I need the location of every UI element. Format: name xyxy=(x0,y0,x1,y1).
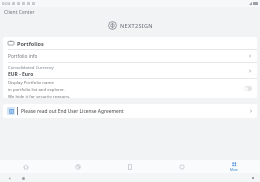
button[interactable]: Documents xyxy=(104,160,156,173)
button[interactable]: Please read out End User License Agreeme… xyxy=(3,104,257,118)
button[interactable]: Home xyxy=(21,176,25,180)
other: Open xyxy=(248,69,252,73)
button[interactable]: More xyxy=(208,160,260,173)
staticText: Portfolios xyxy=(17,40,44,47)
staticText: We hide it for security reasons. xyxy=(8,93,71,98)
staticText: NEXT2SIGN xyxy=(120,22,153,29)
button[interactable]: Overview xyxy=(251,176,255,180)
button[interactable]: Messages xyxy=(156,160,208,173)
button[interactable]: Consolidated Currency xyxy=(3,63,257,78)
staticText: Consolidated Currency xyxy=(8,64,54,70)
button[interactable]: Portfolio xyxy=(52,160,104,173)
button[interactable]: Portfolios xyxy=(3,37,257,49)
button[interactable]: Home xyxy=(0,160,52,173)
staticText: Display Portfolio name xyxy=(8,79,54,85)
button[interactable]: Display Portfolio name xyxy=(3,79,257,98)
staticText: in portfolio list and explorer. xyxy=(8,86,65,92)
button[interactable]: Portfolio info xyxy=(3,50,257,62)
staticText: 0:04 xyxy=(2,1,10,6)
staticText: Client Center xyxy=(4,9,35,16)
other: Open xyxy=(249,109,253,113)
button[interactable]: Back xyxy=(7,176,11,180)
other: Open xyxy=(248,54,252,58)
button[interactable]: Display Portfolio name toggle xyxy=(244,86,252,91)
staticText: More xyxy=(230,168,238,172)
staticText: Portfolio info xyxy=(8,53,38,60)
staticText: EUR - Euro xyxy=(8,71,34,78)
staticText: Please read out End User License Agreeme… xyxy=(21,108,249,115)
